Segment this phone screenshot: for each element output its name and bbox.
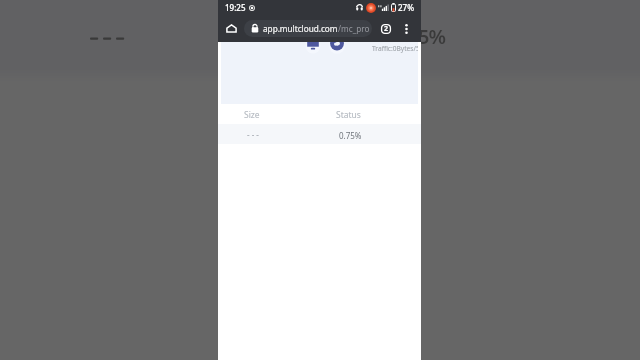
staticText: 5% bbox=[418, 23, 445, 50]
button[interactable]: app.multcloud.com bbox=[244, 20, 372, 37]
button[interactable]: Home bbox=[222, 19, 240, 37]
staticText: 0.75% bbox=[339, 130, 362, 141]
staticText: 27% bbox=[398, 2, 414, 13]
staticText: Status bbox=[336, 109, 361, 121]
staticText: Size bbox=[244, 109, 260, 121]
button[interactable]: Tabs bbox=[378, 21, 394, 37]
button[interactable]: More options bbox=[398, 21, 414, 37]
staticText: 2 bbox=[384, 24, 389, 34]
button[interactable]: - - - bbox=[218, 124, 421, 144]
staticText: Traffic:0Bytes/5GB bbox=[372, 44, 418, 53]
staticText: 19:25 bbox=[225, 2, 246, 13]
staticText: app.multcloud.com bbox=[263, 23, 338, 34]
staticText: - - - bbox=[247, 129, 259, 140]
staticText: /mc_pro bbox=[338, 23, 370, 34]
